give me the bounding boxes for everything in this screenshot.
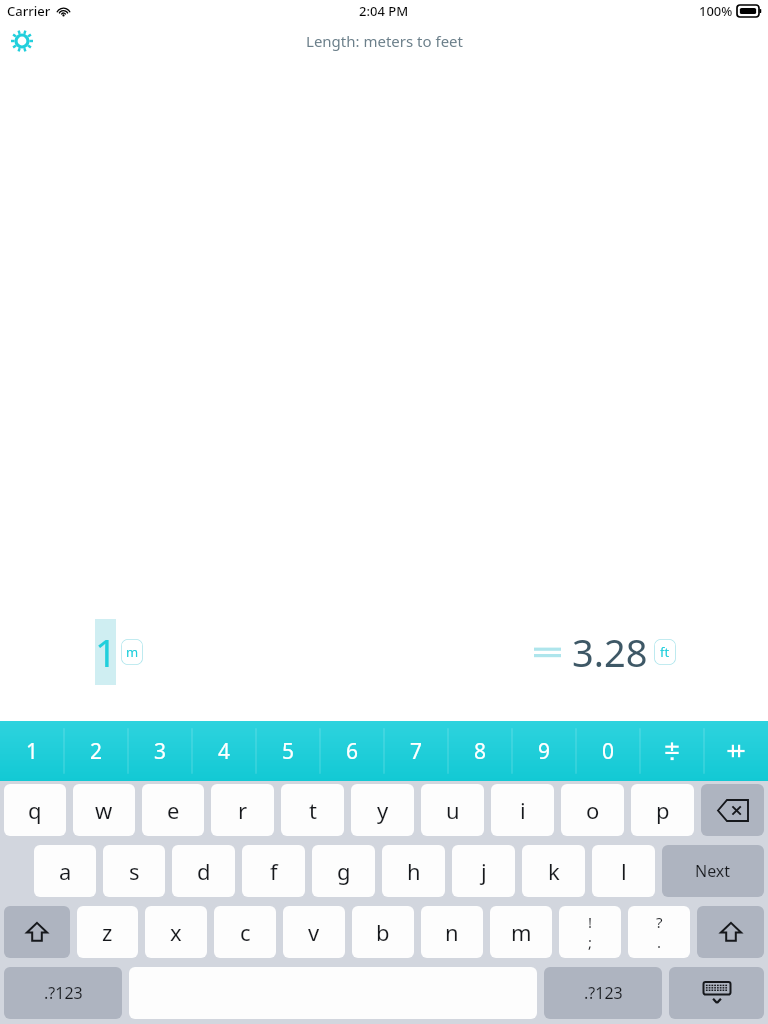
button[interactable]: g — [312, 845, 375, 897]
staticText: .?123 — [584, 982, 623, 1004]
staticText: l — [621, 856, 627, 886]
staticText: 0 — [602, 737, 615, 766]
button[interactable]: v — [283, 906, 345, 958]
button[interactable]: 2 — [64, 721, 128, 781]
staticText: 2:04 PM — [359, 2, 409, 20]
staticText: Length: meters to feet — [306, 31, 463, 51]
staticText: ft — [660, 643, 670, 661]
button[interactable]: z — [77, 906, 138, 958]
button[interactable]: 9 — [512, 721, 576, 781]
button[interactable]: 3.28 — [534, 626, 676, 678]
button[interactable]: x — [145, 906, 207, 958]
staticText: a — [59, 856, 72, 886]
staticText: r — [238, 795, 248, 825]
staticText: d — [197, 856, 211, 886]
staticText: 6 — [346, 737, 359, 766]
staticText: Carrier — [7, 2, 51, 20]
button[interactable]: o — [561, 784, 624, 836]
staticText: n — [445, 917, 459, 947]
button[interactable]: ? — [628, 906, 690, 958]
button[interactable]: b — [352, 906, 414, 958]
staticText: c — [240, 917, 251, 947]
staticText: p — [656, 795, 670, 825]
button[interactable]: i — [491, 784, 554, 836]
button[interactable]: p — [631, 784, 694, 836]
staticText: 7 — [410, 737, 423, 766]
button[interactable]: Shift — [697, 906, 764, 958]
staticText: .?123 — [44, 982, 83, 1004]
staticText: o — [586, 795, 600, 825]
button[interactable]: .?123 — [4, 967, 122, 1019]
staticText: e — [167, 795, 180, 825]
button[interactable]: 4 — [192, 721, 256, 781]
button[interactable]: s — [103, 845, 165, 897]
button[interactable]: q — [4, 784, 66, 836]
staticText: q — [28, 795, 42, 825]
staticText: h — [407, 856, 421, 886]
staticText: 1 — [95, 626, 116, 678]
button[interactable]: c — [214, 906, 276, 958]
button[interactable]: n — [421, 906, 483, 958]
button[interactable]: e — [142, 784, 204, 836]
button[interactable]: k — [522, 845, 585, 897]
button[interactable]: 8 — [448, 721, 512, 781]
button[interactable]: Hide keyboard — [669, 967, 764, 1019]
button[interactable]: 6 — [320, 721, 384, 781]
button[interactable]: t — [281, 784, 344, 836]
button[interactable]: Shift — [4, 906, 70, 958]
staticText: z — [102, 917, 113, 947]
button[interactable]: w — [73, 784, 135, 836]
staticText: y — [377, 795, 389, 825]
staticText: i — [520, 795, 526, 825]
button[interactable]: 1 — [95, 619, 143, 685]
button[interactable]: Next — [662, 845, 764, 897]
button[interactable]: ! — [559, 906, 621, 958]
button[interactable]: 7 — [384, 721, 448, 781]
staticText: 8 — [474, 737, 487, 766]
staticText: 9 — [538, 737, 551, 766]
staticText: m — [511, 917, 532, 947]
button[interactable]: j — [452, 845, 515, 897]
button[interactable]: 5 — [256, 721, 320, 781]
button[interactable]: a — [34, 845, 96, 897]
staticText: k — [548, 856, 560, 886]
staticText: 3 — [154, 737, 167, 766]
button[interactable]: m — [490, 906, 552, 958]
staticText: 1 — [26, 737, 39, 766]
staticText: f — [270, 856, 278, 886]
button[interactable]: Sign and decimal point — [640, 721, 704, 781]
button[interactable]: y — [351, 784, 414, 836]
button[interactable]: Settings — [6, 25, 38, 57]
staticText: s — [129, 856, 140, 886]
staticText: 2 — [90, 737, 103, 766]
staticText: 4 — [218, 737, 231, 766]
staticText: 5 — [282, 737, 295, 766]
staticText: 3.28 — [572, 626, 648, 678]
staticText: u — [446, 795, 460, 825]
staticText: m — [126, 643, 139, 661]
button[interactable]: d — [172, 845, 235, 897]
button[interactable]: Units — [704, 721, 768, 781]
button[interactable]: 1 — [0, 721, 64, 781]
staticText: b — [376, 917, 390, 947]
button[interactable]: .?123 — [544, 967, 662, 1019]
staticText: t — [309, 795, 317, 825]
button[interactable]: 3 — [128, 721, 192, 781]
button[interactable]: r — [211, 784, 274, 836]
button[interactable]: u — [421, 784, 484, 836]
button[interactable]: Backspace — [701, 784, 764, 836]
staticText: g — [337, 856, 351, 886]
staticText: 100% — [699, 2, 733, 20]
button[interactable]: h — [382, 845, 445, 897]
staticText: v — [308, 917, 320, 947]
button[interactable]: 0 — [576, 721, 640, 781]
staticText: ? — [656, 912, 663, 932]
staticText: j — [481, 856, 487, 886]
staticText: x — [170, 917, 182, 947]
button[interactable]: f — [242, 845, 305, 897]
staticText: . — [657, 932, 662, 952]
button[interactable]: l — [592, 845, 655, 897]
staticText: ! — [588, 912, 593, 932]
staticText: Next — [695, 860, 731, 882]
